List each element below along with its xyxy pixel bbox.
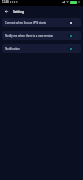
staticText: Connect when Secure VPN starts bbox=[5, 21, 66, 25]
button[interactable]: Toggle setting bbox=[67, 21, 73, 24]
button[interactable]: Toggle setting bbox=[67, 47, 73, 50]
staticText: Notify me when there is a new version bbox=[5, 34, 66, 38]
button[interactable]: Notify me when there is a new version bbox=[2, 31, 81, 40]
button[interactable]: Toggle setting bbox=[67, 34, 73, 37]
staticText: 12:36 bbox=[2, 0, 9, 4]
button[interactable]: Connect when Secure VPN starts bbox=[2, 18, 81, 27]
button[interactable]: Notification bbox=[2, 44, 81, 53]
staticText: Setting bbox=[13, 10, 24, 14]
button[interactable]: Back bbox=[2, 7, 11, 16]
staticText: Notification bbox=[5, 47, 66, 51]
